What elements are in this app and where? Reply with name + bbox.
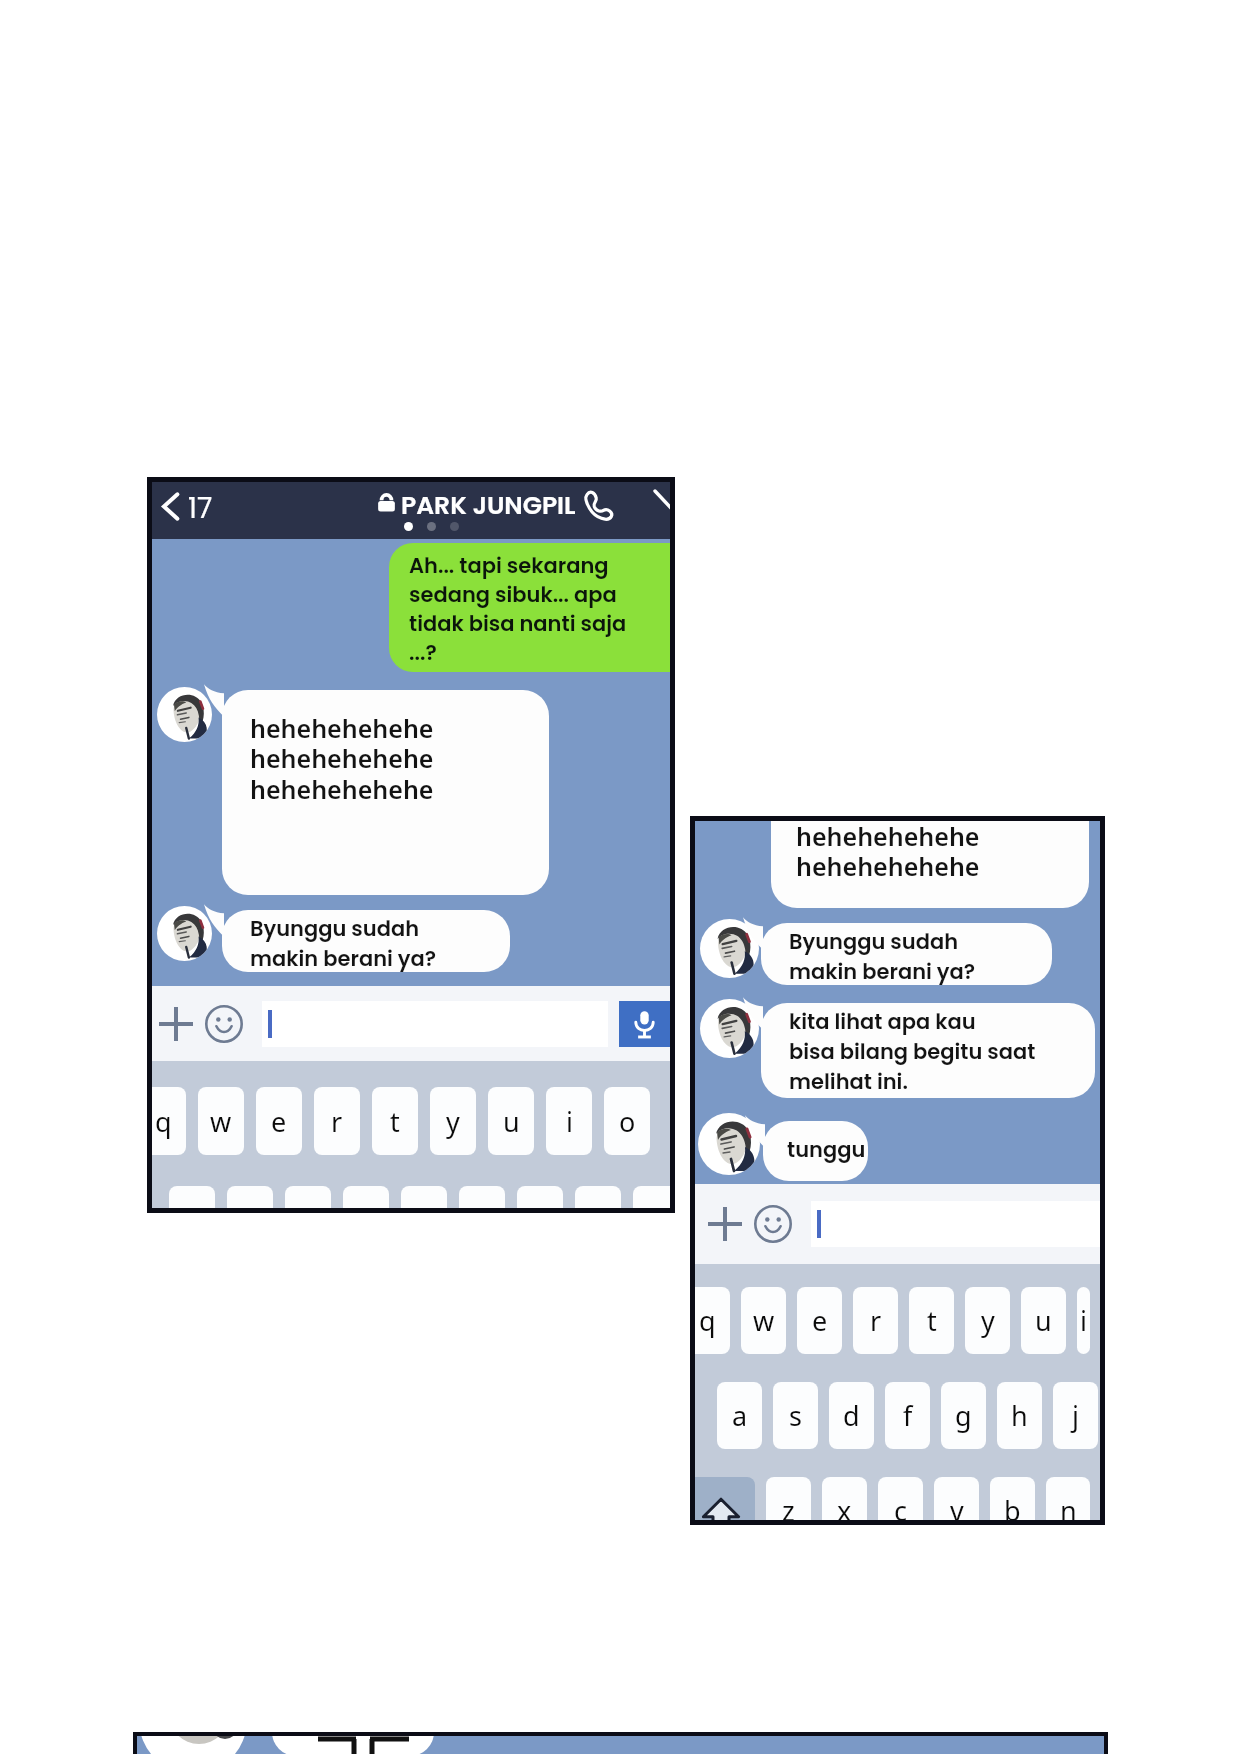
staticText: Byunggu sudah makin berani ya?: [250, 914, 437, 972]
button[interactable]: g: [941, 1382, 986, 1449]
button[interactable]: y: [965, 1287, 1010, 1354]
button[interactable]: a: [169, 1186, 215, 1208]
staticText: b: [1004, 1492, 1021, 1520]
staticText: z: [782, 1492, 795, 1520]
button[interactable]: w: [198, 1087, 244, 1155]
button[interactable]: Back: [154, 489, 188, 523]
staticText: e: [271, 1103, 287, 1140]
button[interactable]: e: [797, 1287, 842, 1354]
staticText: o: [619, 1103, 636, 1140]
button[interactable]: q: [695, 1287, 730, 1354]
button[interactable]: Add attachment: [156, 1004, 196, 1044]
button[interactable]: w: [741, 1287, 786, 1354]
button[interactable]: c: [878, 1477, 923, 1520]
staticText: c: [894, 1492, 907, 1520]
button[interactable]: [811, 1201, 1100, 1247]
button[interactable]: v: [934, 1477, 979, 1520]
button[interactable]: [262, 1001, 608, 1047]
staticText: hehehehehehe hehehehehehe hehehehehehe: [250, 711, 434, 807]
staticText: i: [566, 1103, 573, 1140]
button[interactable]: k: [575, 1186, 621, 1208]
button[interactable]: hehehehehehe hehehehehehe hehehehehehe: [204, 690, 549, 895]
staticText: t: [927, 1302, 937, 1339]
button[interactable]: Ah... tapi sekarang sedang sibuk... apa …: [389, 543, 670, 672]
staticText: y: [446, 1103, 460, 1140]
button[interactable]: n: [1046, 1477, 1090, 1520]
button[interactable]: d: [829, 1382, 874, 1449]
button[interactable]: u: [488, 1087, 534, 1155]
staticText: PARK JUNGPIL: [401, 488, 576, 523]
button[interactable]: u: [1021, 1287, 1066, 1354]
button[interactable]: r: [314, 1087, 360, 1155]
staticText: g: [955, 1397, 972, 1434]
staticText: w: [753, 1302, 775, 1339]
staticText: q: [699, 1302, 716, 1339]
button[interactable]: b: [990, 1477, 1035, 1520]
button[interactable]: i: [1077, 1287, 1090, 1354]
staticText: u: [1035, 1302, 1052, 1339]
button[interactable]: z: [766, 1477, 811, 1520]
staticText: a: [732, 1397, 748, 1434]
staticText: h: [1011, 1397, 1028, 1434]
button[interactable]: h: [459, 1186, 505, 1208]
staticText: w: [210, 1103, 232, 1140]
staticText: t: [390, 1103, 400, 1140]
staticText: v: [950, 1492, 964, 1520]
button[interactable]: tunggu: [745, 1121, 868, 1181]
button[interactable]: o: [604, 1087, 650, 1155]
button[interactable]: q: [152, 1087, 186, 1155]
button[interactable]: More options: [652, 488, 670, 518]
button[interactable]: s: [227, 1186, 273, 1208]
button[interactable]: i: [546, 1087, 592, 1155]
button[interactable]: t: [909, 1287, 954, 1354]
button[interactable]: f: [343, 1186, 389, 1208]
staticText: r: [870, 1302, 882, 1339]
staticText: 17: [188, 489, 213, 528]
button[interactable]: Byunggu sudah makin berani ya?: [204, 910, 510, 972]
staticText: Byunggu sudah makin berani ya?: [789, 927, 976, 985]
button[interactable]: kita lihat apa kau bisa bilang begitu sa…: [743, 1003, 1095, 1098]
staticText: hehehehehehe hehehehehehe: [796, 821, 980, 884]
button[interactable]: Emoji: [753, 1204, 793, 1244]
staticText: i: [1080, 1302, 1087, 1339]
button[interactable]: Shift: [695, 1477, 755, 1520]
button[interactable]: x: [822, 1477, 867, 1520]
staticText: tunggu: [787, 1135, 866, 1164]
button[interactable]: h: [997, 1382, 1042, 1449]
button[interactable]: j: [1053, 1382, 1098, 1449]
button[interactable]: Emoji: [204, 1004, 244, 1044]
button[interactable]: Add attachment: [705, 1204, 745, 1244]
staticText: f: [903, 1397, 913, 1434]
button[interactable]: y: [430, 1087, 476, 1155]
staticText: j: [1072, 1397, 1079, 1434]
button[interactable]: j: [517, 1186, 563, 1208]
button[interactable]: a: [717, 1382, 762, 1449]
button[interactable]: Byunggu sudah makin berani ya?: [743, 923, 1052, 985]
button[interactable]: l: [633, 1186, 670, 1208]
button[interactable]: f: [885, 1382, 930, 1449]
button[interactable]: Call: [581, 486, 617, 522]
staticText: Ah... tapi sekarang sedang sibuk... apa …: [409, 551, 627, 668]
button[interactable]: [771, 821, 1089, 908]
button[interactable]: Voice message: [619, 1001, 670, 1047]
staticText: e: [812, 1302, 828, 1339]
button[interactable]: e: [256, 1087, 302, 1155]
button[interactable]: t: [372, 1087, 418, 1155]
staticText: u: [503, 1103, 520, 1140]
button[interactable]: g: [401, 1186, 447, 1208]
button[interactable]: r: [853, 1287, 898, 1354]
staticText: x: [837, 1492, 852, 1520]
staticText: r: [331, 1103, 343, 1140]
button[interactable]: d: [285, 1186, 331, 1208]
staticText: d: [843, 1397, 860, 1434]
button[interactable]: s: [773, 1382, 818, 1449]
